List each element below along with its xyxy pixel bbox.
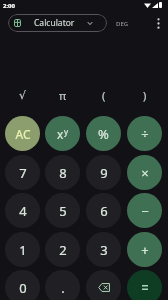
button[interactable]: More options [148,13,168,33]
staticText: − [141,202,149,220]
button[interactable]: Calculator [8,14,107,32]
button[interactable]: − [127,193,162,228]
button[interactable]: 6 [86,193,121,228]
staticText: 2 [59,241,67,259]
button[interactable]: 5 [45,193,80,228]
button[interactable]: ( [86,78,121,113]
staticText: AC [15,126,31,142]
button[interactable]: % [86,116,121,151]
staticText: √ [19,89,27,102]
button[interactable]: 4 [5,193,40,228]
button[interactable]: × [127,155,162,190]
button[interactable]: π [45,78,80,113]
button[interactable]: 2 [45,232,80,267]
staticText: 2:00 [3,2,15,10]
staticText: % [98,125,109,143]
staticText: ) [143,88,147,103]
button[interactable]: AC [5,116,40,151]
button[interactable]: ) [127,78,162,113]
staticText: π [59,88,67,103]
button[interactable]: 9 [86,155,121,190]
button[interactable]: 1 [5,232,40,267]
staticText: 3 [100,241,108,259]
button[interactable]: . [45,270,80,300]
button[interactable]: x [45,116,80,151]
button[interactable]: 0 [5,270,40,300]
staticText: 9 [100,164,108,182]
button[interactable]: √ [5,78,40,113]
staticText: × [141,164,149,182]
button[interactable]: 8 [45,155,80,190]
button[interactable]: 3 [86,232,121,267]
button[interactable]: Backspace [86,270,121,300]
staticText: 4 [19,202,27,220]
button[interactable]: 7 [5,155,40,190]
button[interactable]: Equals [127,270,162,300]
staticText: 5 [59,202,67,220]
button[interactable]: + [127,232,162,267]
staticText: ÷ [141,125,149,143]
button[interactable]: DEG [116,20,129,28]
staticText: 6 [100,202,108,220]
staticText: Calculator [34,17,75,29]
staticText: 8 [59,164,67,182]
staticText: y [64,126,69,137]
staticText: + [141,241,149,259]
staticText: 0 [19,279,27,297]
staticText: x [57,126,64,142]
staticText: 7 [19,164,27,182]
staticText: 1 [19,241,27,259]
button[interactable]: ÷ [127,116,162,151]
staticText: ( [102,88,106,103]
staticText: . [61,279,65,297]
